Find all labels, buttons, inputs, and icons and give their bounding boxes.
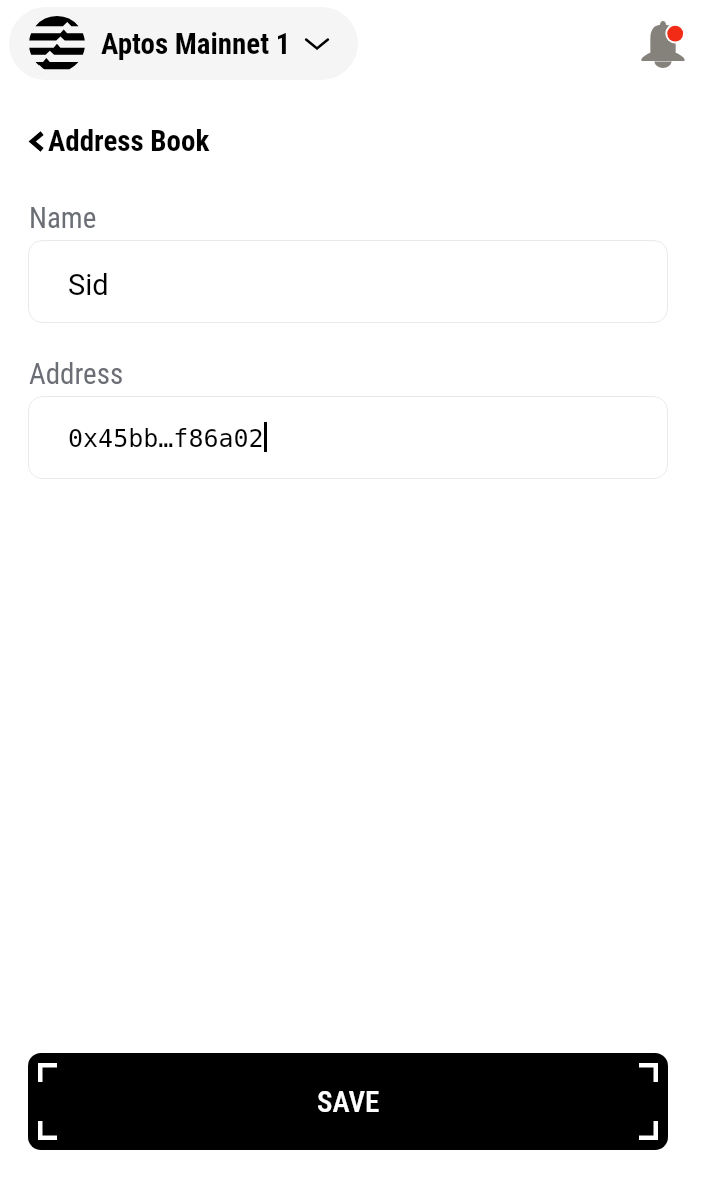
button[interactable]: SAVE xyxy=(28,1053,668,1150)
staticText: Address Book xyxy=(48,124,210,158)
button[interactable]: 0x45bb…f86a02 xyxy=(28,396,668,479)
staticText: Sid xyxy=(68,268,109,302)
staticText: Address xyxy=(29,357,124,391)
staticText: SAVE xyxy=(317,1085,380,1119)
button[interactable]: Notifications xyxy=(626,3,700,77)
button[interactable]: Sid xyxy=(28,240,668,323)
staticText: 0x45bb…f86a02 xyxy=(68,424,264,453)
staticText: Aptos Mainnet 1 xyxy=(101,27,291,61)
staticText: Name xyxy=(29,201,97,235)
button[interactable]: Back xyxy=(28,124,210,158)
button[interactable]: Aptos Mainnet 1 xyxy=(9,7,358,80)
